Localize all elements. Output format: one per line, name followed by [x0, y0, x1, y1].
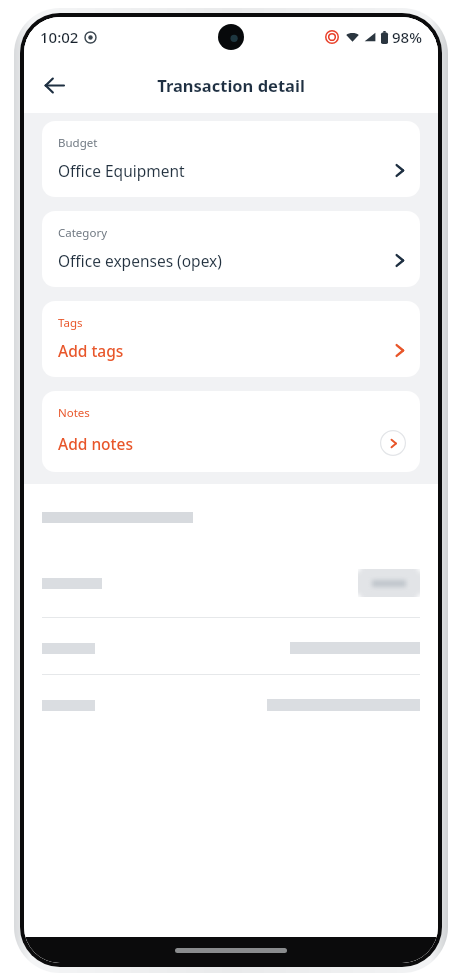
staticText: 10:02 — [40, 27, 79, 47]
button[interactable]: Budget — [42, 121, 420, 197]
staticText: Notes — [58, 405, 90, 421]
staticText: Transaction detail — [157, 74, 305, 96]
button[interactable]: Notes — [42, 391, 420, 472]
staticText: Category — [58, 225, 108, 241]
staticText: Tags — [58, 315, 83, 331]
staticText: Budget — [58, 135, 98, 151]
button[interactable]: Category — [42, 211, 420, 287]
staticText: Office Equipment — [58, 160, 393, 181]
button[interactable]: Back — [32, 63, 76, 107]
staticText: 98% — [392, 27, 422, 47]
staticText: Add tags — [58, 340, 393, 361]
button[interactable]: Tags — [42, 301, 420, 377]
staticText: Office expenses (opex) — [58, 250, 393, 271]
staticText: Add notes — [58, 433, 380, 454]
